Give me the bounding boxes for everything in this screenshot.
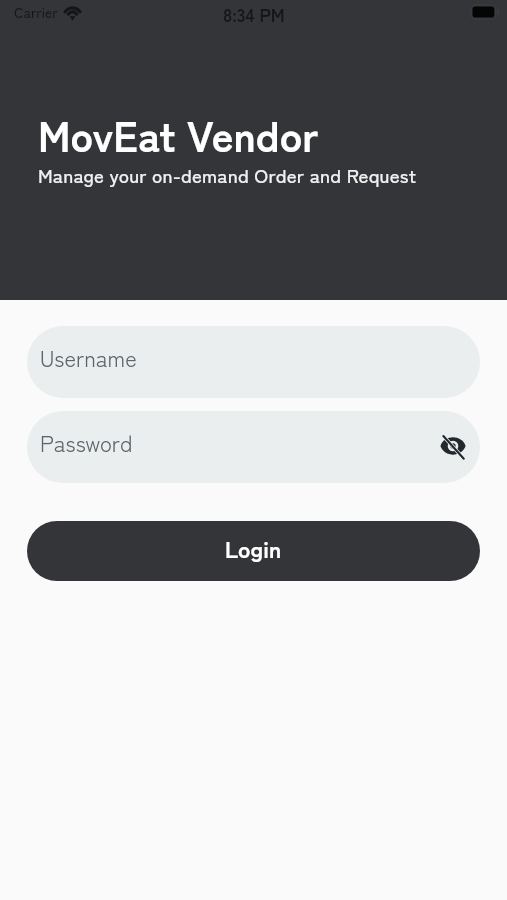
- button[interactable]: Login: [27, 521, 480, 581]
- button[interactable]: Username: [27, 326, 480, 398]
- staticText: Carrier: [14, 2, 58, 22]
- button[interactable]: Password: [27, 411, 480, 483]
- staticText: Manage your on-demand Order and Request: [38, 161, 417, 189]
- staticText: Username: [40, 341, 137, 373]
- button[interactable]: Show password: [433, 426, 473, 466]
- staticText: Password: [40, 426, 133, 458]
- staticText: Login: [225, 531, 282, 564]
- staticText: 8:34 PM: [223, 1, 285, 27]
- staticText: MovEat Vendor: [38, 103, 319, 164]
